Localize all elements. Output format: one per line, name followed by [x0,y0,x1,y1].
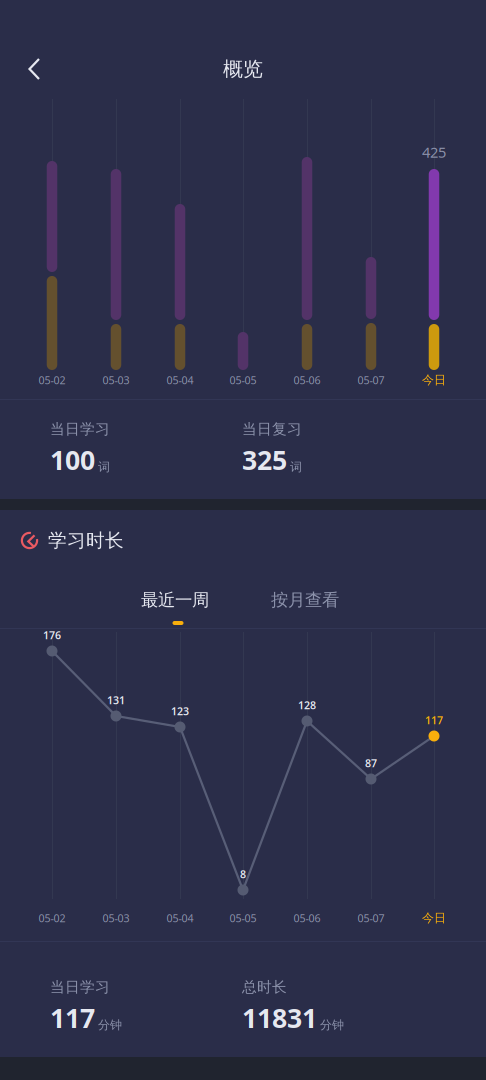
staticText: 05-03 [102,911,129,925]
staticText: 今日 [422,373,446,387]
staticText: 425 [422,142,446,162]
staticText: 当日复习 [242,420,302,438]
staticText: 分钟 [98,1018,122,1032]
staticText: 05-03 [102,373,129,387]
staticText: 117 [50,1000,95,1035]
staticText: 05-05 [229,911,256,925]
staticText: 100 [50,442,95,477]
staticText: 当日学习 [50,978,110,996]
staticText: 当日学习 [50,420,110,438]
staticText: 8 [240,867,246,881]
staticText: 概览 [223,57,263,81]
staticText: 325 [242,442,287,477]
staticText: 总时长 [242,978,287,996]
staticText: 05-04 [166,373,193,387]
staticText: 131 [107,693,125,707]
staticText: 词 [290,460,302,474]
staticText: 123 [171,704,189,718]
staticText: 05-04 [166,911,193,925]
staticText: 176 [43,628,61,642]
button[interactable]: 按月查看 [249,582,361,626]
staticText: 05-06 [293,373,320,387]
staticText: 05-07 [357,911,384,925]
staticText: 词 [98,460,110,474]
staticText: 117 [425,713,443,727]
staticText: 今日 [422,911,446,925]
button[interactable]: Back [0,46,48,92]
staticText: 学习时长 [48,529,124,552]
staticText: 最近一周 [141,589,209,611]
staticText: 分钟 [320,1018,344,1032]
staticText: 128 [298,698,316,712]
staticText: 11831 [242,1000,317,1035]
staticText: 按月查看 [271,589,339,611]
staticText: 05-02 [38,373,65,387]
staticText: 05-06 [293,911,320,925]
staticText: 87 [365,756,377,770]
staticText: 05-02 [38,911,65,925]
staticText: 05-07 [357,373,384,387]
staticText: 05-05 [229,373,256,387]
button[interactable]: 最近一周 [119,582,231,626]
